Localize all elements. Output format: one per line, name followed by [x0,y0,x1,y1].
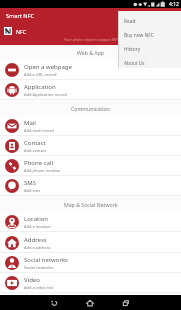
staticText: Mail [24,119,36,127]
staticText: Application [24,83,56,91]
button[interactable]: Recents [114,295,138,310]
staticText: Phone call [24,159,53,167]
button[interactable]: Back [42,295,66,310]
button[interactable]: Read [118,14,181,28]
staticText: Add Application record [24,92,67,97]
staticText: Your phone doesn't support NFC [64,37,119,42]
button[interactable]: Address [0,232,181,253]
staticText: Add a video link [24,285,54,290]
staticText: Social networks [24,256,68,264]
button[interactable]: Mail [0,116,181,136]
staticText: SMS [24,179,37,187]
staticText: Web & App [77,49,105,56]
staticText: 4:12 [169,1,179,8]
staticText: Map & Social Network [64,201,118,208]
button[interactable]: SMS [0,176,181,196]
staticText: Add a location [24,224,51,229]
staticText: Open a webpage [24,63,72,71]
staticText: Location [24,215,49,223]
button[interactable]: Application [0,80,181,100]
button[interactable]: Location [0,212,181,232]
button[interactable]: About Us [118,56,181,70]
staticText: Video [24,276,40,284]
staticText: Read [124,18,136,25]
staticText: Communication [71,105,110,112]
staticText: Smart NFC [6,12,34,20]
staticText: Address [24,236,47,244]
button[interactable]: Social networks [0,253,181,273]
staticText: NFC [16,28,26,35]
staticText: Add phone number [24,168,61,173]
staticText: Add mail record [24,128,54,133]
staticText: Add a URL record [24,72,57,77]
button[interactable]: Contact [0,136,181,156]
staticText: Contact [24,139,46,147]
button[interactable]: Buy now NFC [118,28,181,42]
button[interactable]: Video [0,273,181,293]
button[interactable]: Phone call [0,156,181,176]
staticText: History [124,46,141,53]
button[interactable]: Open a webpage [0,59,181,80]
button[interactable]: Home [78,295,102,310]
staticText: Add a address [24,245,51,250]
staticText: About Us [124,60,145,67]
staticText: Add sms [24,188,41,193]
staticText: Social networks [24,265,54,270]
staticText: Buy now NFC [124,32,154,39]
staticText: Add contact [24,148,47,153]
button[interactable]: History [118,42,181,56]
